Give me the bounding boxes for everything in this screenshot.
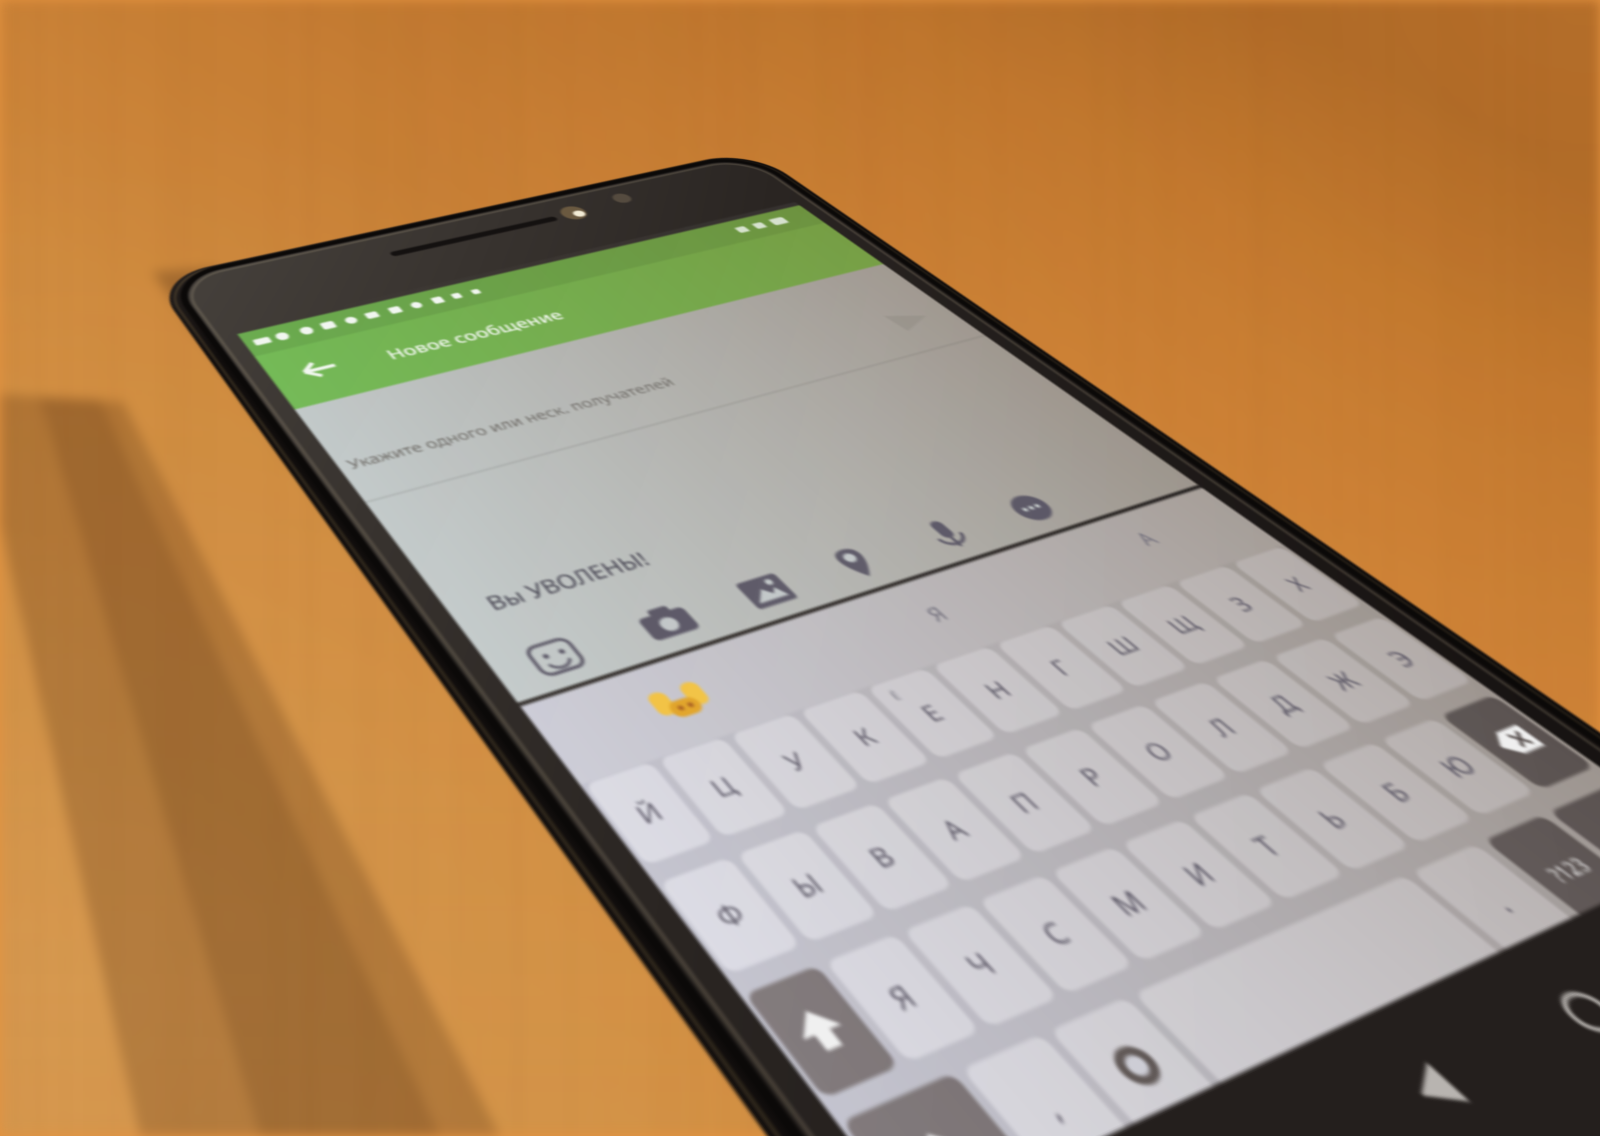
button[interactable] <box>121 128 1600 1136</box>
button[interactable]: Phone on a wooden table showing a new me… <box>0 0 1600 1136</box>
